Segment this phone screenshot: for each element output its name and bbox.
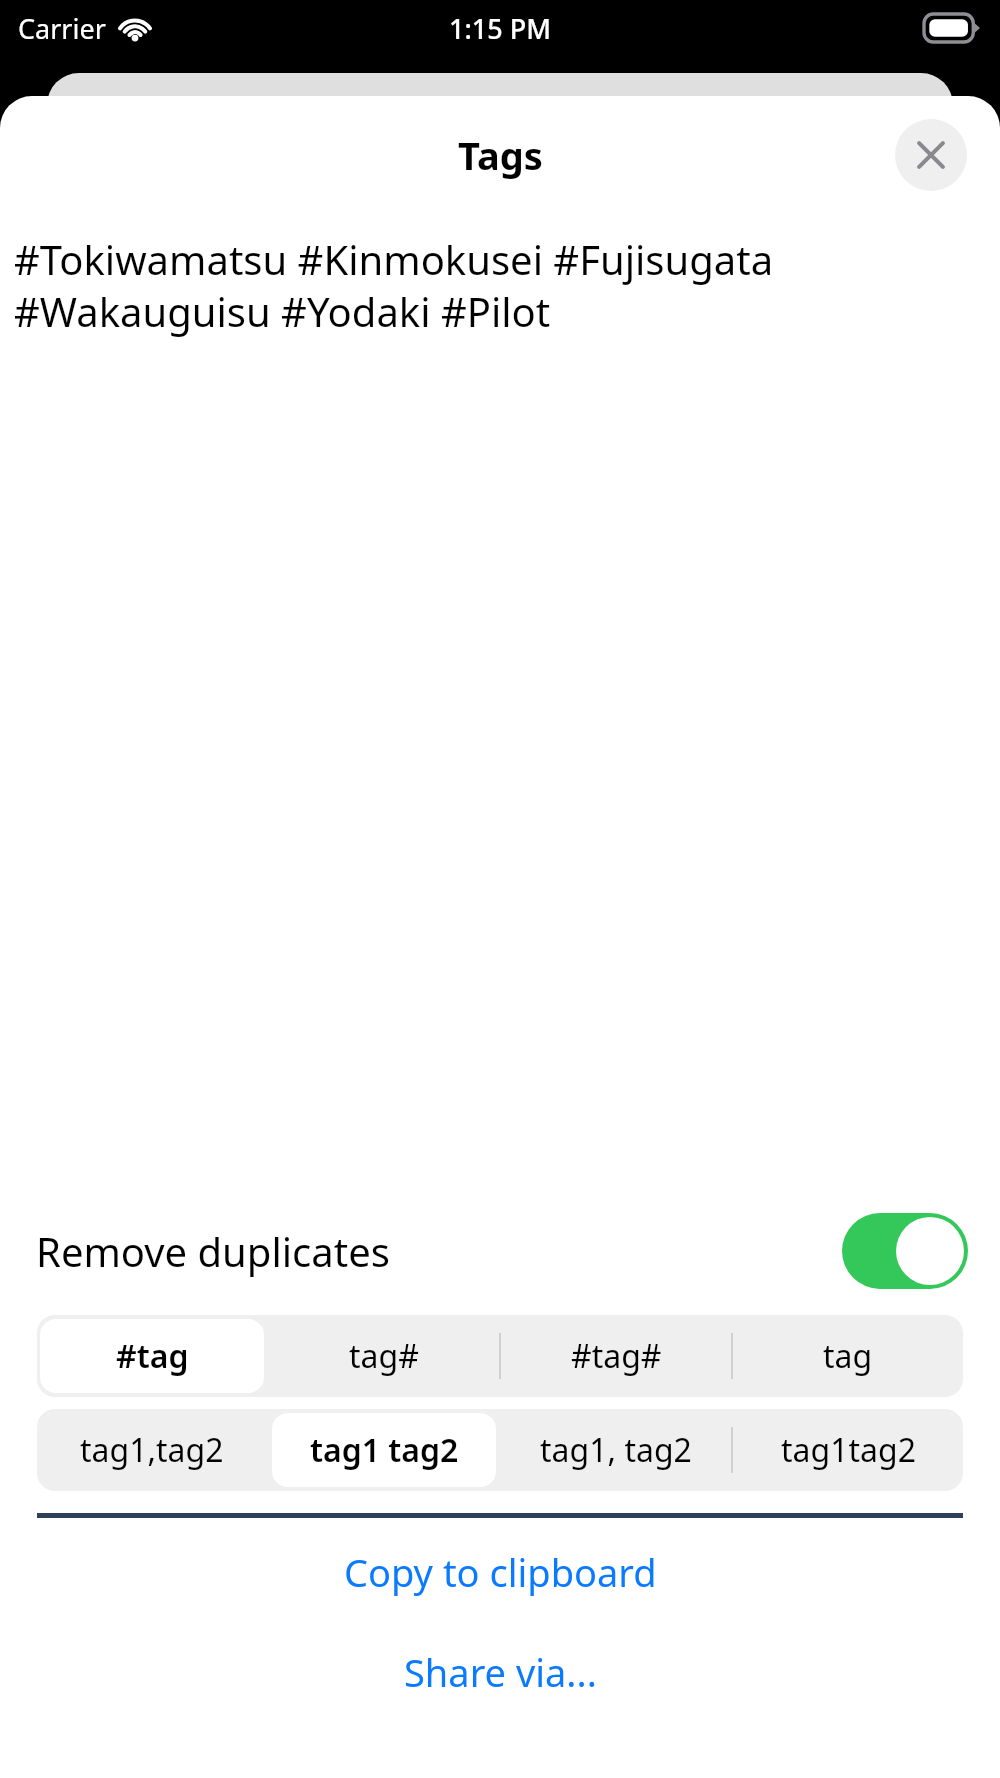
staticText: Remove duplicates (36, 1224, 390, 1278)
button[interactable]: tag1,tag2 (37, 1409, 267, 1491)
staticText: #Tokiwamatsu #Kinmokusei #Fujisugata #Wa… (14, 232, 986, 339)
button[interactable]: Remove duplicates (0, 1201, 1000, 1301)
button[interactable]: Share via... (0, 1626, 1000, 1718)
staticText: 1:15 PM (449, 10, 551, 47)
staticText: Carrier (18, 10, 106, 47)
staticText: #tag (116, 1334, 189, 1378)
button[interactable]: Copy to clipboard (0, 1518, 1000, 1626)
staticText: tag1tag2 (781, 1428, 916, 1472)
staticText: Tags (458, 129, 543, 181)
staticText: tag# (349, 1334, 419, 1378)
staticText: Share via... (404, 1646, 597, 1698)
button[interactable]: tag (733, 1315, 963, 1397)
staticText: tag1,tag2 (80, 1428, 224, 1472)
staticText: tag1, tag2 (540, 1428, 692, 1472)
button[interactable]: tag1, tag2 (501, 1409, 731, 1491)
button[interactable]: Remove duplicates toggle (842, 1213, 968, 1289)
staticText: tag1 tag2 (310, 1428, 459, 1472)
button[interactable]: tag# (269, 1315, 499, 1397)
staticText: tag (823, 1334, 873, 1378)
button[interactable]: tag1 tag2 (269, 1409, 499, 1491)
button[interactable]: Close (895, 119, 967, 191)
button[interactable]: #tag# (501, 1315, 731, 1397)
button[interactable]: tag1tag2 (733, 1409, 963, 1491)
button[interactable]: #tag (37, 1315, 267, 1397)
staticText: #tag# (571, 1334, 662, 1378)
staticText: Copy to clipboard (344, 1546, 657, 1598)
